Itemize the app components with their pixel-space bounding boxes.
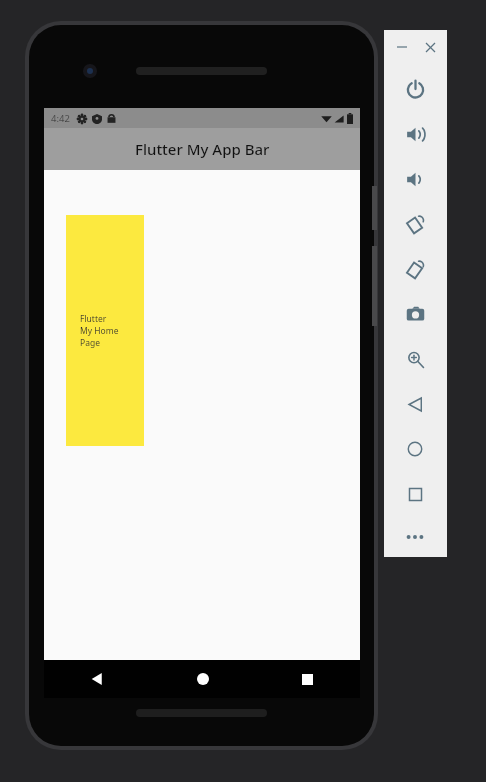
button[interactable]: Volume down [396,160,434,198]
button[interactable]: Volume up [396,115,434,153]
button[interactable]: Rotate right [396,250,434,288]
button[interactable]: Home [150,660,255,698]
button[interactable]: Recent apps [255,660,360,698]
button[interactable]: Rotate left [396,205,434,243]
button[interactable]: Home [396,430,434,468]
button[interactable]: Overview [396,475,434,513]
button[interactable]: Back [396,385,434,423]
button[interactable]: Flutter [66,215,144,446]
staticText: Page [80,337,100,349]
button[interactable]: Screenshot [396,295,434,333]
button[interactable]: More [396,518,434,556]
button[interactable]: Close [421,38,439,56]
button[interactable]: Zoom [396,340,434,378]
button[interactable]: Back [44,660,150,698]
button[interactable]: Minimize [393,38,411,56]
staticText: Flutter My App Bar [135,139,270,159]
staticText: My Home [80,325,119,337]
button[interactable]: Power [396,70,434,108]
staticText: 4:42 [51,112,70,125]
staticText: Flutter [80,313,107,325]
button[interactable]: Flutter My App Bar [44,128,360,170]
